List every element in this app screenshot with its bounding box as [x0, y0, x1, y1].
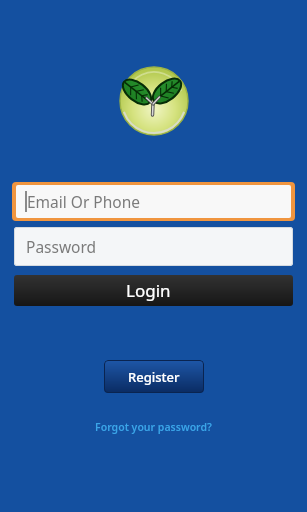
button[interactable]: Forgot your password? [95, 420, 212, 434]
staticText: Forgot your password? [95, 420, 212, 434]
staticText: Login [126, 279, 171, 302]
staticText: Register [128, 368, 180, 386]
button[interactable]: Email Or Phone [12, 182, 295, 221]
button[interactable]: Register [104, 360, 204, 393]
button[interactable]: Login [14, 275, 293, 306]
staticText: Email Or Phone [27, 191, 141, 212]
button[interactable]: Password [14, 227, 293, 266]
staticText: Password [26, 236, 97, 257]
